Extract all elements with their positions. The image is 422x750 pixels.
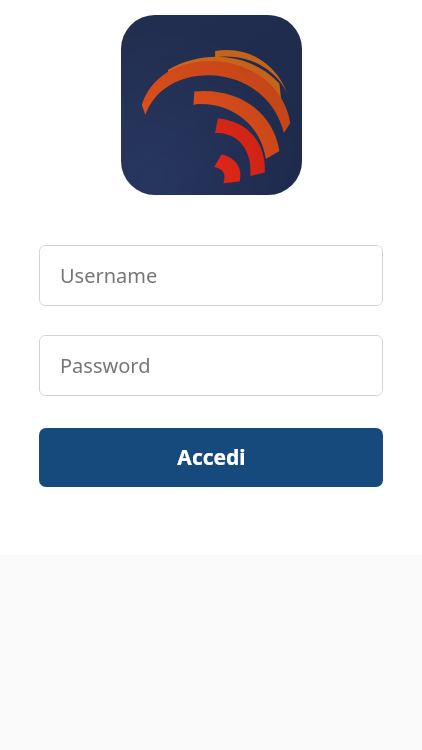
staticText: Username <box>60 262 158 289</box>
button[interactable]: Accedi <box>39 428 383 487</box>
staticText: Password <box>60 352 151 379</box>
button[interactable]: Password <box>39 335 383 396</box>
staticText: Accedi <box>177 443 246 472</box>
other: App logo <box>121 15 302 195</box>
button[interactable]: Username <box>39 245 383 306</box>
